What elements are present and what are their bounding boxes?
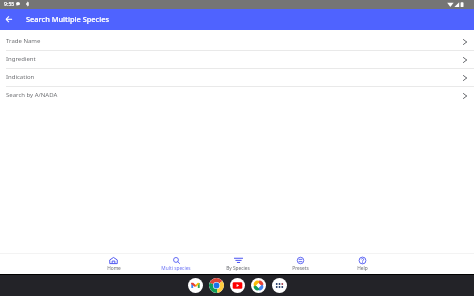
button[interactable]: Help bbox=[331, 253, 393, 274]
button[interactable]: All apps bbox=[272, 278, 287, 293]
button[interactable]: By Species bbox=[207, 253, 269, 274]
button[interactable]: YouTube bbox=[230, 278, 245, 293]
button[interactable]: Trade Name bbox=[0, 33, 474, 51]
button[interactable]: Search by A/NADA bbox=[0, 87, 474, 105]
button[interactable]: Ingredient bbox=[0, 51, 474, 69]
button[interactable]: Home bbox=[82, 253, 145, 274]
staticText: Search by A/NADA bbox=[6, 91, 58, 99]
button[interactable]: Presets bbox=[269, 253, 331, 274]
staticText: By Species bbox=[226, 265, 250, 272]
button[interactable]: Navigate up bbox=[1, 13, 16, 26]
button[interactable]: Multi species bbox=[145, 253, 207, 274]
staticText: Search Multiple Species bbox=[26, 14, 110, 24]
staticText: Multi species bbox=[161, 265, 191, 272]
staticText: Help bbox=[357, 265, 368, 272]
staticText: Presets bbox=[292, 265, 309, 272]
button[interactable]: Chrome bbox=[209, 278, 224, 293]
button[interactable]: Gmail bbox=[188, 278, 203, 293]
staticText: Trade Name bbox=[6, 37, 41, 45]
button[interactable]: Photos bbox=[251, 278, 266, 293]
staticText: Indication bbox=[6, 73, 35, 81]
staticText: 9:55 bbox=[4, 0, 15, 7]
button[interactable]: Indication bbox=[0, 69, 474, 87]
staticText: Ingredient bbox=[6, 55, 36, 63]
staticText: Home bbox=[107, 265, 121, 272]
